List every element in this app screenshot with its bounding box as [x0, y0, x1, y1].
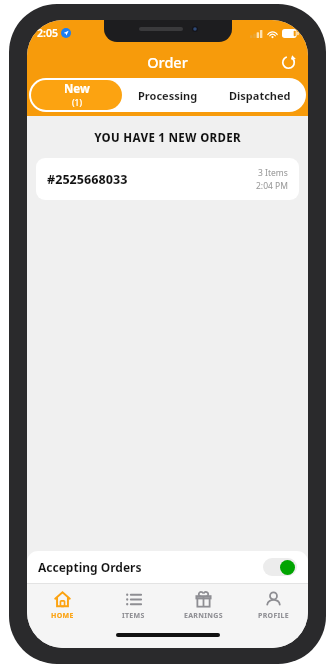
- button[interactable]: HOME: [27, 584, 98, 628]
- staticText: Order: [27, 52, 308, 72]
- button[interactable]: Processing: [122, 78, 214, 112]
- button[interactable]: Refresh: [274, 48, 302, 76]
- staticText: #2525668033: [47, 171, 128, 188]
- button[interactable]: #2525668033: [36, 158, 299, 200]
- staticText: ITEMS: [122, 611, 145, 621]
- button[interactable]: ITEMS: [98, 584, 168, 628]
- button[interactable]: New: [31, 80, 122, 110]
- button[interactable]: EARNINGS: [168, 584, 238, 628]
- button[interactable]: Dispatched: [214, 78, 306, 112]
- staticText: 3 Items: [258, 167, 288, 179]
- staticText: Dispatched: [229, 88, 291, 103]
- button[interactable]: Accepting Orders toggle, on: [263, 558, 297, 576]
- staticText: Accepting Orders: [38, 559, 142, 575]
- staticText: New: [64, 81, 90, 97]
- button[interactable]: PROFILE: [238, 584, 308, 628]
- staticText: 2:05: [37, 26, 58, 40]
- staticText: Processing: [138, 88, 198, 103]
- staticText: YOU HAVE 1 NEW ORDER: [27, 130, 308, 146]
- staticText: 2:04 PM: [256, 180, 288, 192]
- staticText: PROFILE: [258, 611, 289, 621]
- staticText: EARNINGS: [184, 611, 223, 621]
- staticText: (1): [72, 97, 82, 109]
- staticText: HOME: [51, 611, 74, 621]
